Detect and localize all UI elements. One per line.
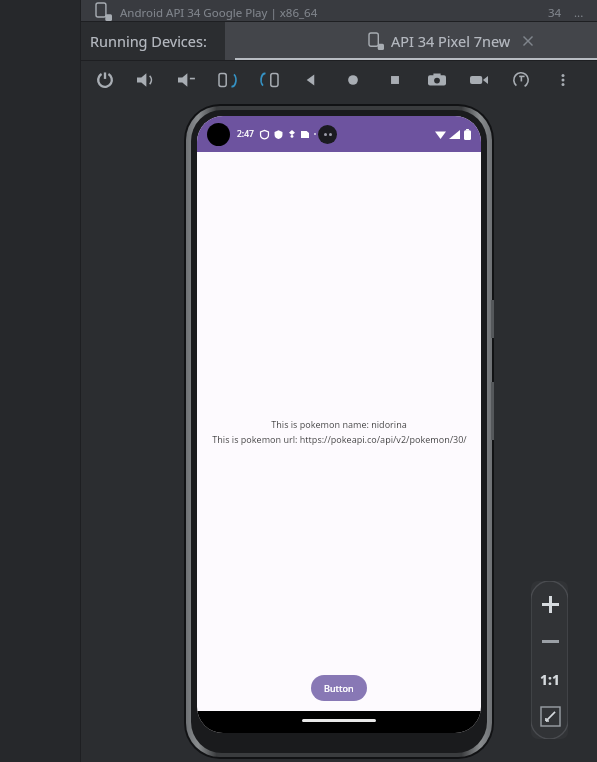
staticText: Running Devices: (90, 31, 207, 51)
staticText: ... (574, 5, 584, 21)
staticText: Android API 34 Google Play | x86_64 (120, 5, 318, 21)
button[interactable]: More (551, 68, 575, 92)
staticText: 34 (548, 5, 562, 21)
button[interactable]: API 34 Pixel 7new (225, 22, 597, 60)
button[interactable]: Zoom out (535, 626, 565, 656)
staticText: 1:1 (540, 670, 560, 689)
button[interactable]: Zoom to actual size (535, 664, 565, 694)
button[interactable]: Zoom in (535, 589, 565, 619)
button[interactable]: Volume down (175, 68, 199, 92)
button[interactable]: Close tab (521, 34, 535, 48)
button[interactable]: Rotate left (216, 68, 240, 92)
button[interactable]: Power (93, 68, 117, 92)
staticText: API 34 Pixel 7new (391, 31, 511, 51)
button[interactable]: Record screen (467, 68, 491, 92)
staticText: This is pokemon name: nidorina (271, 418, 407, 430)
staticText: 2:47 (237, 128, 254, 140)
button[interactable]: Button (311, 675, 367, 701)
button[interactable]: Home (341, 68, 365, 92)
button[interactable]: Back again (509, 68, 533, 92)
button[interactable]: Rotate right (257, 68, 281, 92)
button[interactable]: Screenshot (425, 68, 449, 92)
button[interactable]: Volume up (134, 68, 158, 92)
button[interactable]: Overview (383, 68, 407, 92)
staticText: This is pokemon url: https://pokeapi.co/… (212, 433, 467, 445)
button[interactable]: Zoom to fit (535, 701, 565, 731)
staticText: Button (324, 682, 354, 694)
button[interactable]: Back (299, 68, 323, 92)
